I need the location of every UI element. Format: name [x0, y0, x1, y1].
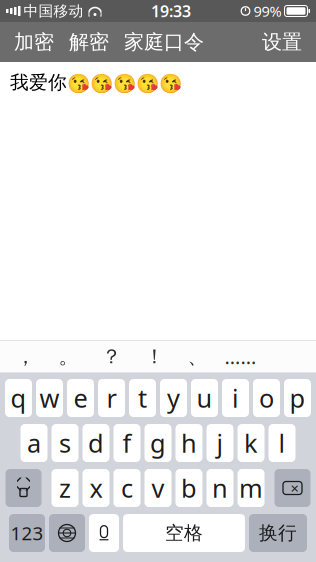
staticText: 加密	[14, 30, 54, 54]
staticText: u	[196, 381, 212, 415]
staticText: 123	[10, 521, 43, 545]
button[interactable]: m	[237, 469, 264, 507]
staticText: ……	[224, 343, 256, 370]
button[interactable]: 空格	[123, 514, 245, 552]
button[interactable]: 解密	[65, 21, 113, 63]
staticText: p	[289, 381, 305, 415]
button[interactable]: d	[82, 424, 109, 462]
staticText: h	[181, 426, 197, 460]
staticText: b	[181, 471, 197, 505]
button[interactable]: 加密	[10, 21, 58, 63]
staticText: c	[121, 471, 133, 505]
button[interactable]: Shift	[5, 469, 41, 507]
staticText: 设置	[262, 30, 302, 54]
button[interactable]: 设置	[258, 21, 306, 63]
staticText: 19:33	[151, 0, 191, 22]
button[interactable]: Next keyboard	[49, 514, 85, 552]
button[interactable]: 家庭口令	[120, 21, 208, 63]
button[interactable]: z	[51, 469, 78, 507]
staticText: j	[216, 426, 223, 460]
button[interactable]: 换行	[249, 514, 307, 552]
button[interactable]: 123	[9, 514, 45, 552]
staticText: e	[73, 381, 87, 415]
staticText: 、	[187, 344, 207, 369]
staticText: d	[88, 426, 104, 460]
staticText: ×	[290, 478, 298, 498]
staticText: k	[244, 426, 258, 460]
button[interactable]: b	[175, 469, 202, 507]
button[interactable]: p	[284, 379, 311, 417]
staticText: 中国移动	[23, 2, 83, 20]
button[interactable]: v	[144, 469, 171, 507]
button[interactable]: i	[222, 379, 249, 417]
staticText: 我爱你😘😘😘😘😘	[10, 71, 182, 94]
staticText: 。	[58, 344, 78, 369]
staticText: f	[122, 426, 131, 460]
button[interactable]: o	[253, 379, 280, 417]
button[interactable]: r	[98, 379, 125, 417]
staticText: y	[167, 381, 180, 415]
button[interactable]: x	[82, 469, 109, 507]
staticText: s	[59, 426, 71, 460]
button[interactable]: k	[237, 424, 264, 462]
button[interactable]: s	[51, 424, 78, 462]
staticText: n	[212, 471, 228, 505]
button[interactable]: Dictation	[89, 514, 119, 552]
button[interactable]: ，	[4, 340, 47, 372]
button[interactable]: q	[5, 379, 32, 417]
button[interactable]: a	[20, 424, 47, 462]
staticText: 换行	[259, 521, 297, 544]
button[interactable]: t	[129, 379, 156, 417]
button[interactable]: j	[206, 424, 233, 462]
staticText: i	[232, 381, 239, 415]
button[interactable]: w	[36, 379, 63, 417]
button[interactable]: u	[191, 379, 218, 417]
staticText: 空格	[165, 521, 203, 544]
staticText: x	[89, 471, 102, 505]
staticText: w	[39, 381, 59, 415]
button[interactable]: e	[67, 379, 94, 417]
staticText: g	[150, 426, 166, 460]
button[interactable]: ！	[133, 340, 176, 372]
button[interactable]: l	[268, 424, 295, 462]
staticText: v	[151, 471, 164, 505]
staticText: ！	[144, 344, 164, 369]
button[interactable]: Delete	[274, 469, 310, 507]
button[interactable]: n	[206, 469, 233, 507]
button[interactable]: 、	[176, 340, 219, 372]
staticText: t	[138, 381, 147, 415]
staticText: 解密	[69, 30, 109, 54]
staticText: 99%	[253, 1, 281, 21]
button[interactable]: f	[113, 424, 140, 462]
staticText: z	[59, 471, 71, 505]
button[interactable]: y	[160, 379, 187, 417]
staticText: ？	[101, 344, 121, 369]
button[interactable]: g	[144, 424, 171, 462]
button[interactable]: c	[113, 469, 140, 507]
staticText: l	[278, 426, 285, 460]
button[interactable]: ？	[90, 340, 133, 372]
staticText: m	[239, 471, 263, 505]
button[interactable]: ……	[219, 340, 262, 372]
button[interactable]: 。	[47, 340, 90, 372]
staticText: r	[106, 381, 116, 415]
staticText: 家庭口令	[124, 30, 204, 54]
staticText: ，	[15, 344, 35, 369]
staticText: o	[259, 381, 274, 415]
staticText: a	[27, 426, 41, 460]
button[interactable]: h	[175, 424, 202, 462]
staticText: q	[10, 381, 26, 415]
